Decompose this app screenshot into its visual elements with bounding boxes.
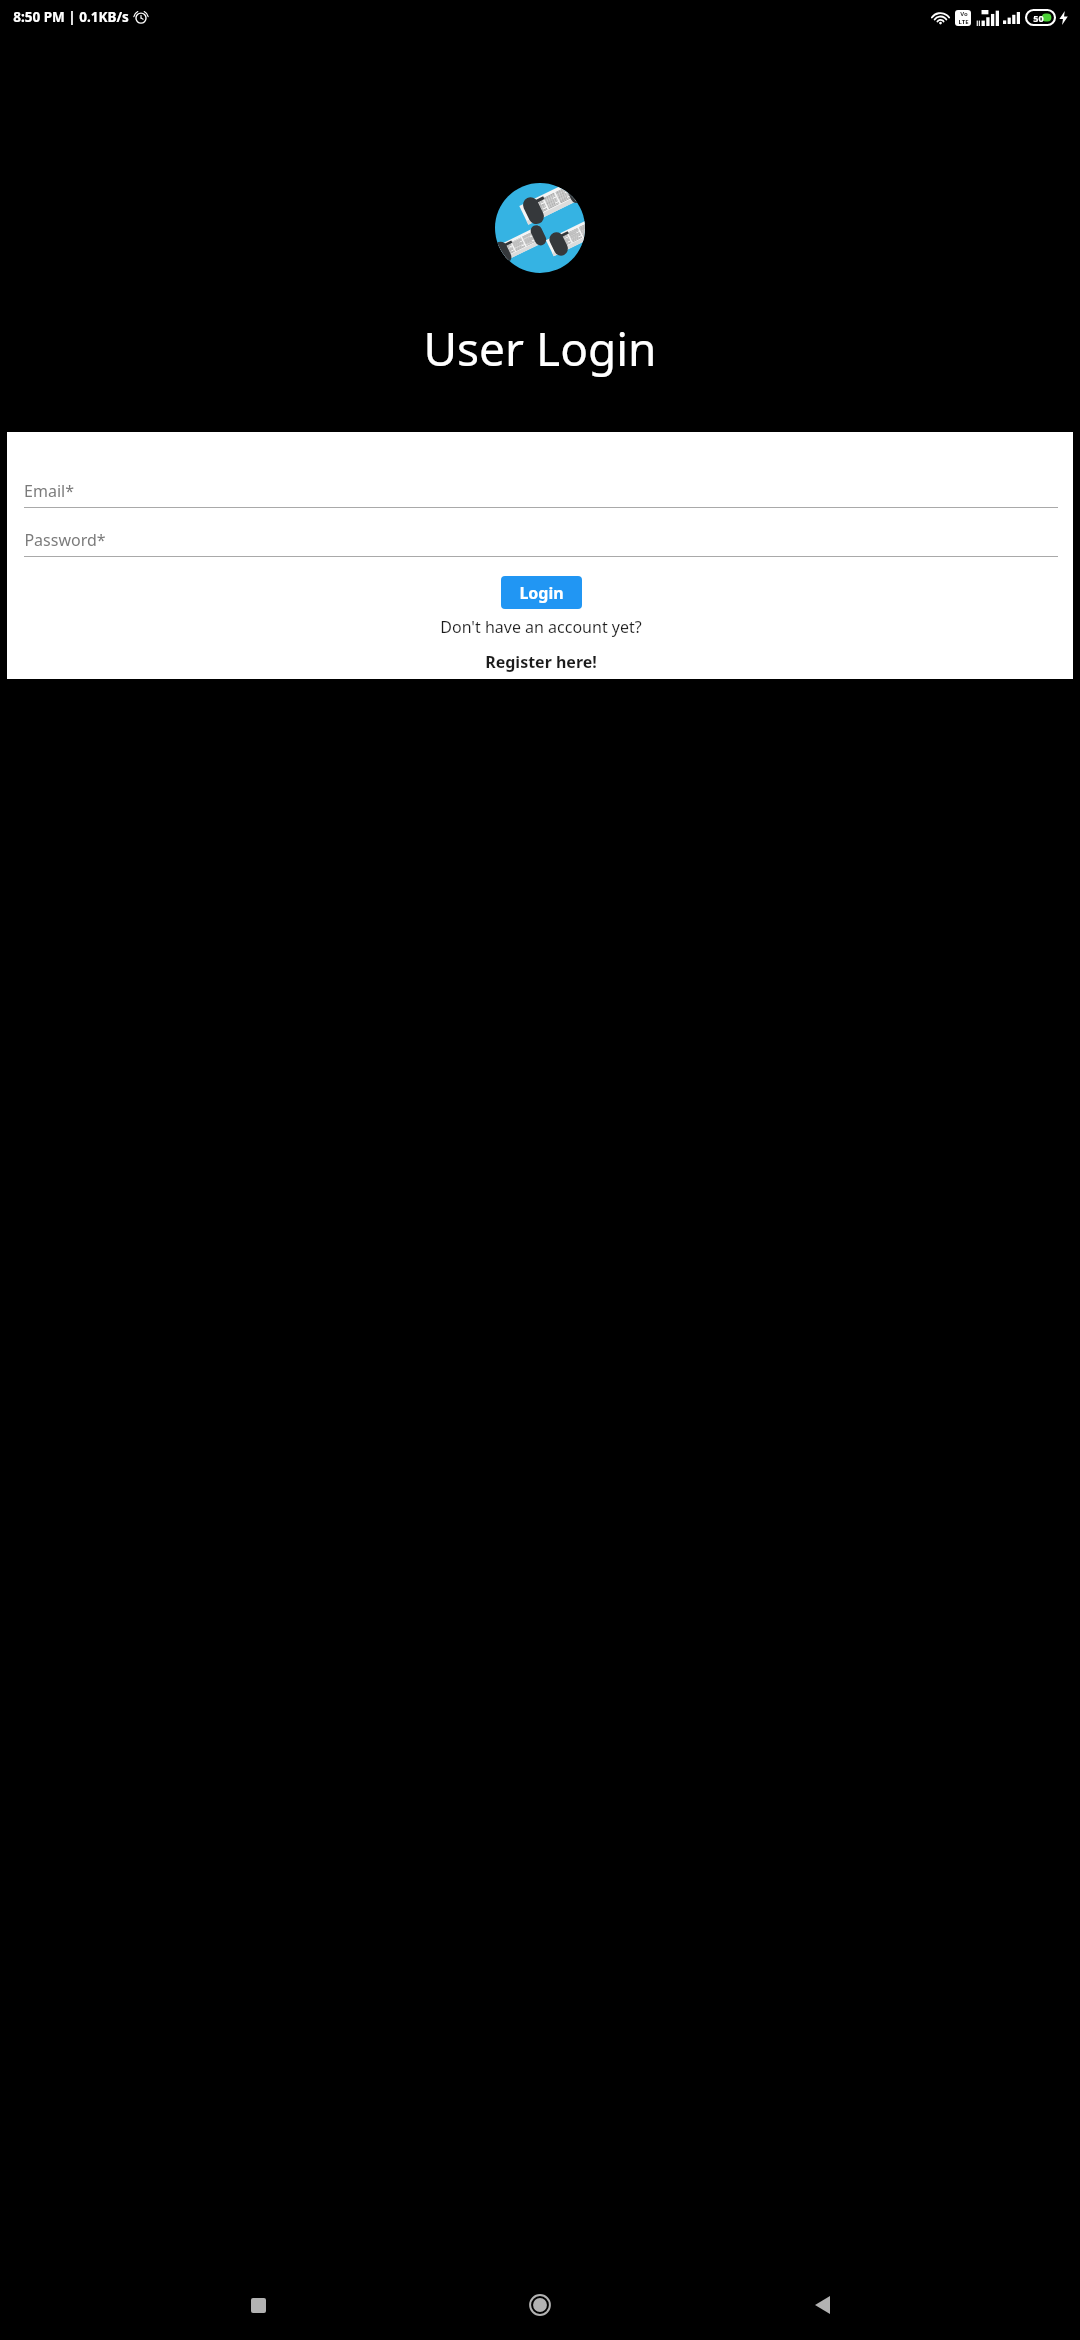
staticText: Login bbox=[519, 582, 564, 604]
button[interactable]: Login bbox=[501, 576, 582, 609]
button[interactable]: Register here! bbox=[479, 649, 603, 675]
staticText: 50 bbox=[1033, 12, 1044, 24]
staticText: 8:50 PM | 0.1KB/s bbox=[13, 8, 129, 26]
button[interactable]: Home bbox=[516, 2281, 564, 2329]
button[interactable]: Recent apps bbox=[234, 2281, 282, 2329]
button[interactable]: Back bbox=[798, 2281, 846, 2329]
staticText: Password* bbox=[24, 529, 106, 551]
staticText: LTE bbox=[958, 18, 969, 26]
staticText: Vo bbox=[960, 10, 968, 18]
staticText: Email* bbox=[24, 480, 74, 502]
button[interactable]: Password* bbox=[24, 523, 1058, 557]
button[interactable]: Email* bbox=[24, 474, 1058, 508]
staticText: Don't have an account yet? bbox=[440, 616, 642, 638]
staticText: Register here! bbox=[485, 651, 597, 673]
staticText: User Login bbox=[423, 317, 657, 380]
